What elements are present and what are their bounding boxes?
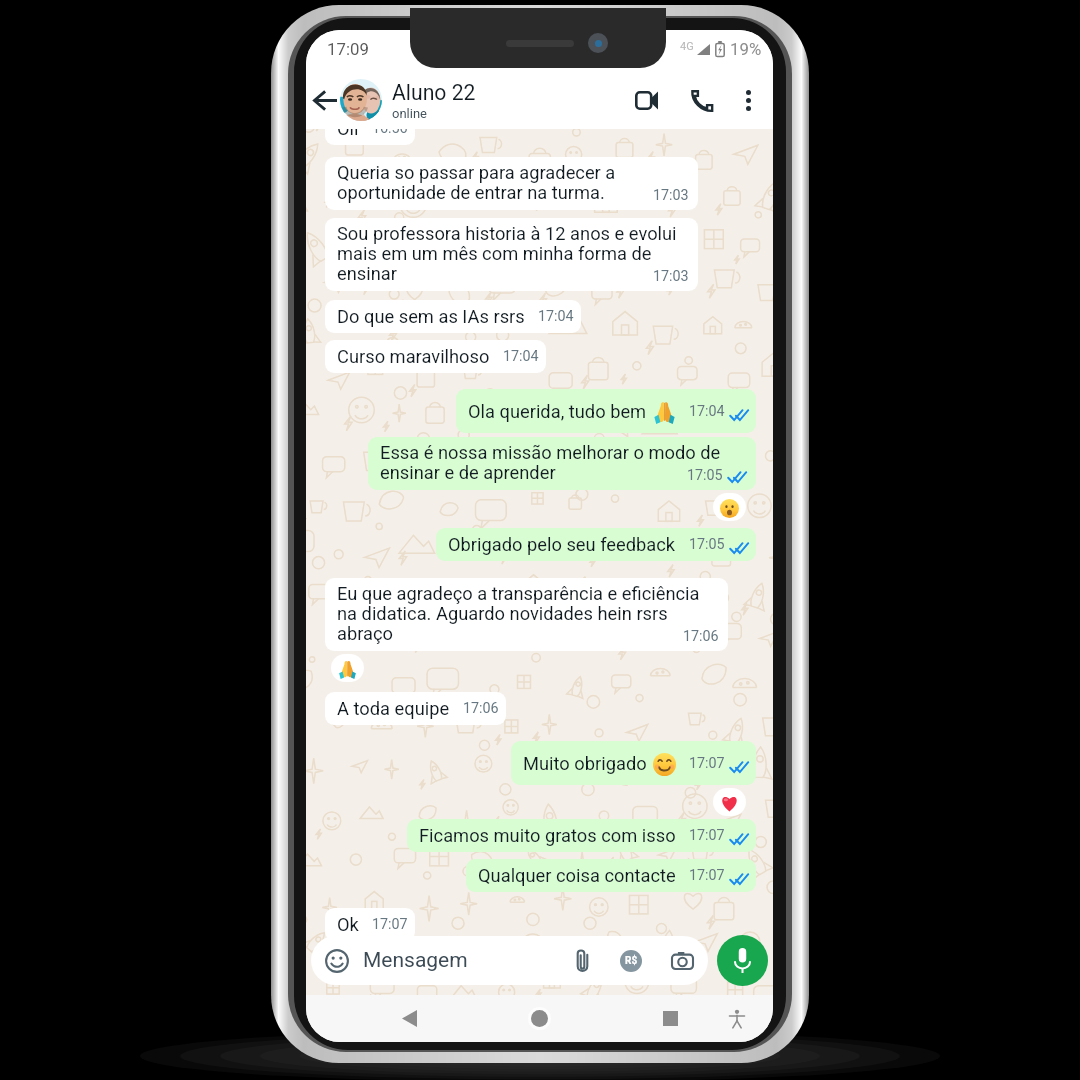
button[interactable]: Accessibility [717,995,757,1042]
staticText: Queria so passar para agradecer a oportu… [337,162,616,204]
button[interactable]: Aluno 22 [340,70,618,129]
staticText: 17:03 [653,268,689,285]
staticText: 17:04 [503,348,539,365]
button[interactable]: Obrigado pelo seu feedback [436,528,756,561]
staticText: 17:06 [463,700,499,717]
button[interactable]: Call [676,77,728,123]
staticText: 17:07 [372,916,408,933]
button[interactable]: Curso maravilhoso [325,340,546,373]
staticText: Sou professora historia à 12 anos e evol… [337,223,677,285]
button[interactable]: Ficamos muito gratos com isso [407,819,756,852]
button[interactable]: Ola querida, tudo bem [456,389,756,433]
staticText: Do que sem as IAs rsrs [337,306,525,327]
button[interactable]: Do que sem as IAs rsrs [325,300,581,333]
button[interactable]: A toda equipe [325,692,506,725]
staticText: 17:06 [683,628,719,645]
staticText: Essa é nossa missão melhorar o modo de e… [380,442,721,484]
staticText: R$ [625,955,638,967]
staticText: Qualquer coisa contacte [478,865,676,886]
staticText: 17:07 [689,867,725,884]
staticText: 17:05 [687,467,723,484]
staticText: Obrigado pelo seu feedback [448,534,676,555]
staticText: Muito obrigado [523,753,647,774]
staticText: 17:04 [689,403,725,420]
staticText: 17:03 [653,187,689,204]
staticText: Ola querida, tudo bem [468,401,647,422]
staticText: Aluno 22 [392,80,476,105]
button[interactable]: Qualquer coisa contacte [466,859,756,892]
staticText: 19% [730,39,762,59]
staticText: A toda equipe [337,698,450,719]
button[interactable]: Ok [325,908,415,941]
staticText: Ficamos muito gratos com isso [419,825,676,846]
button[interactable]: Mensagem [311,936,708,985]
button[interactable]: Reaction [713,788,746,816]
button[interactable]: Voice message [717,935,768,986]
button[interactable]: Video call [618,77,676,123]
staticText: Oii [337,129,359,139]
button[interactable]: Muito obrigado [511,741,756,785]
button[interactable]: Eu que agradeço a transparência e eficiê… [325,578,728,651]
staticText: Eu que agradeço a transparência e eficiê… [337,583,700,645]
button[interactable]: Home [488,995,591,1042]
button[interactable]: Reaction [713,493,746,521]
staticText: Curso maravilhoso [337,346,490,367]
staticText: online [392,106,427,121]
staticText: 17:07 [689,827,725,844]
staticText: 4G [680,40,694,53]
button[interactable]: Reaction [331,654,364,682]
button[interactable]: Queria so passar para agradecer a oportu… [325,157,698,210]
button[interactable]: Essa é nossa missão melhorar o modo de e… [368,437,756,490]
staticText: 17:09 [327,39,369,59]
button[interactable]: Back [310,78,340,122]
staticText: Mensagem [363,948,575,973]
staticText: 17:04 [538,308,574,325]
button[interactable]: More options [728,77,768,123]
button[interactable]: Back [306,995,512,1042]
button[interactable]: Sou professora historia à 12 anos e evol… [325,218,698,291]
staticText: 17:07 [689,755,725,772]
staticText: 17:05 [689,536,725,553]
button[interactable]: Oii [325,129,415,145]
button[interactable]: Recent apps [648,995,692,1042]
staticText: 16:56 [372,129,408,137]
staticText: Ok [337,914,359,935]
